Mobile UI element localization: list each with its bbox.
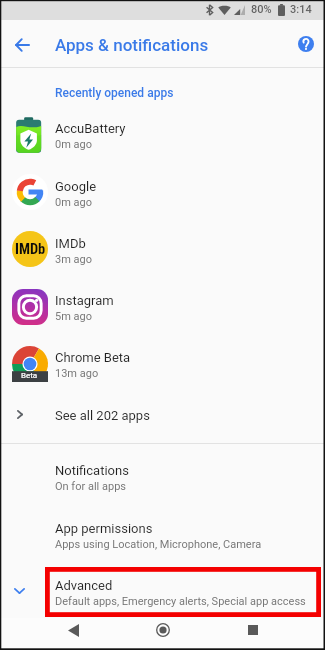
staticText: 0m ago — [55, 196, 92, 209]
staticText: App permissions — [55, 521, 153, 536]
staticText: Apps using Location, Microphone, Camera — [55, 538, 262, 551]
button[interactable] — [0, 567, 325, 617]
button[interactable]: Back — [6, 28, 39, 61]
staticText: See all 202 apps — [55, 408, 150, 423]
staticText: Default apps, Emergency alerts, Special … — [55, 595, 306, 608]
staticText: Apps & notifications — [55, 35, 209, 55]
staticText: AccuBattery — [55, 121, 126, 136]
staticText: Instagram — [55, 293, 114, 308]
staticText: Chrome Beta — [55, 350, 131, 365]
button[interactable]: Recent apps — [237, 614, 269, 646]
staticText: 3:14 — [290, 3, 312, 16]
staticText: Recently opened apps — [55, 86, 174, 100]
staticText: 5m ago — [55, 310, 92, 323]
button[interactable] — [0, 111, 325, 168]
button[interactable]: Back — [57, 614, 89, 646]
button[interactable]: Home — [147, 614, 179, 646]
staticText: 80% — [251, 3, 272, 16]
staticText: 3m ago — [55, 253, 92, 266]
button[interactable] — [0, 512, 325, 560]
button[interactable] — [0, 168, 325, 225]
button[interactable]: Help — [290, 28, 322, 60]
button[interactable] — [0, 226, 325, 283]
staticText: Google — [55, 179, 97, 194]
staticText: Notifications — [55, 463, 129, 478]
button[interactable] — [0, 454, 325, 502]
button[interactable] — [0, 76, 325, 104]
button[interactable] — [0, 283, 325, 340]
staticText: 0m ago — [55, 138, 92, 151]
staticText: 13m ago — [55, 367, 99, 380]
staticText: Beta — [21, 371, 38, 380]
staticText: Advanced — [55, 578, 113, 593]
button[interactable] — [0, 394, 325, 439]
staticText: IMDb — [15, 241, 46, 258]
staticText: IMDb — [55, 236, 86, 251]
button[interactable] — [0, 340, 325, 397]
staticText: On for all apps — [55, 480, 127, 493]
